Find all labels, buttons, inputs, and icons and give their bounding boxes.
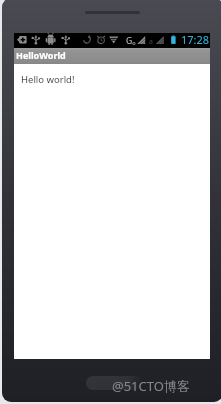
staticText: HelloWorld <box>16 49 66 61</box>
staticText: Hello world! <box>21 73 75 86</box>
staticText: a <box>149 37 153 47</box>
staticText: @51CTO博客 <box>112 377 190 395</box>
staticText: Gₒ <box>126 35 136 47</box>
staticText: 17:28 <box>181 32 210 47</box>
